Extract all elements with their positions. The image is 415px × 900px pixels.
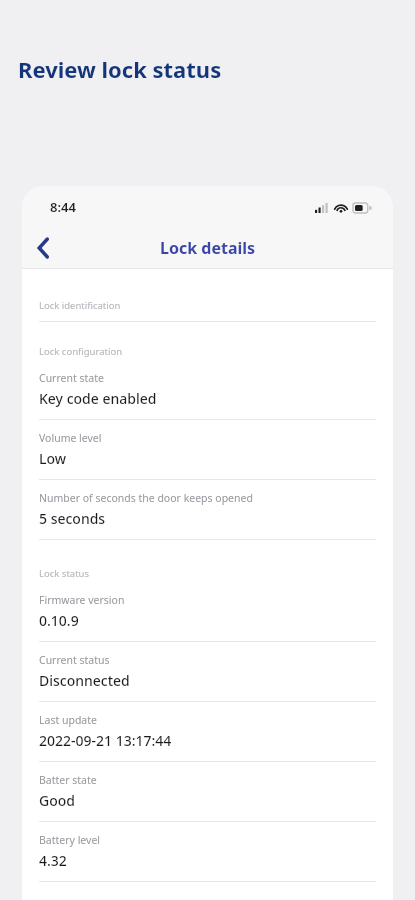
staticText: Batter state (39, 773, 97, 787)
staticText: Firmware version (39, 593, 125, 607)
staticText: 0.10.9 (39, 611, 79, 630)
staticText: Lock status (39, 567, 89, 580)
button[interactable]: Current state (39, 371, 376, 408)
staticText: Good (39, 791, 75, 810)
staticText: Number of seconds the door keeps opened (39, 491, 253, 505)
button[interactable]: Battery level (39, 833, 376, 870)
staticText: Current status (39, 653, 110, 667)
staticText: Battery level (39, 833, 101, 847)
staticText: Last update (39, 713, 97, 727)
staticText: Volume level (39, 431, 102, 445)
staticText: Review lock status (18, 54, 222, 84)
button[interactable]: Batter state (39, 773, 376, 810)
staticText: Disconnected (39, 671, 130, 690)
staticText: Current state (39, 371, 104, 385)
staticText: Lock configuration (39, 345, 123, 358)
button[interactable]: Number of seconds the door keeps opened (39, 491, 376, 528)
button[interactable]: Current status (39, 653, 376, 690)
staticText: 5 seconds (39, 509, 106, 528)
staticText: 4.32 (39, 851, 67, 870)
staticText: Key code enabled (39, 389, 157, 408)
staticText: Lock details (160, 237, 256, 259)
button[interactable]: Back (22, 228, 66, 268)
button[interactable]: Volume level (39, 431, 376, 468)
button[interactable]: Last update (39, 713, 376, 750)
staticText: Low (39, 449, 67, 468)
staticText: 8:44 (50, 198, 76, 216)
staticText: Lock identification (39, 299, 121, 312)
staticText: 2022-09-21 13:17:44 (39, 731, 172, 750)
button[interactable]: Firmware version (39, 593, 376, 630)
